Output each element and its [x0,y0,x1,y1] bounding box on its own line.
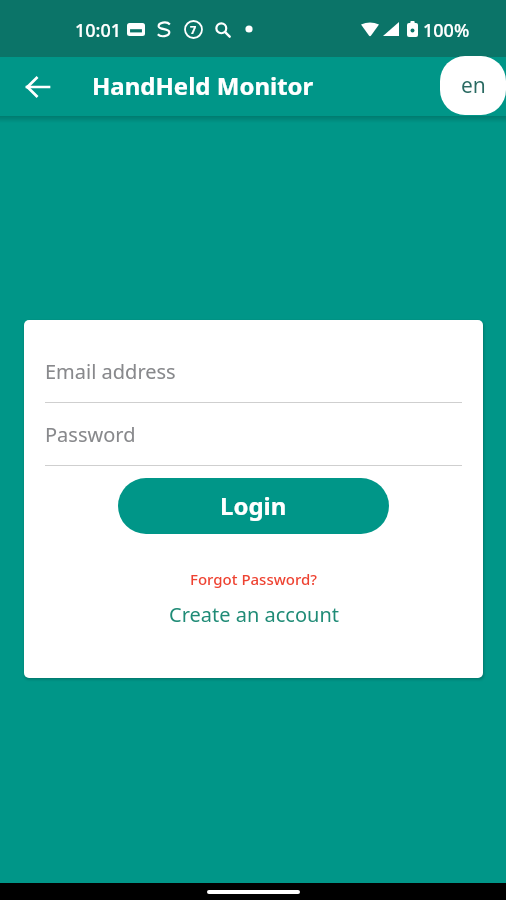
button[interactable]: Forgot Password? [190,569,318,589]
staticText: Forgot Password? [190,569,318,589]
staticText: 100% [423,18,470,43]
button[interactable]: Back [14,64,60,110]
button[interactable]: Create an account [169,601,339,628]
button[interactable]: Email address [45,346,462,403]
button[interactable]: Login [118,478,389,534]
staticText: 7 [190,22,197,37]
staticText: en [461,71,486,100]
staticText: Login [220,489,287,522]
staticText: Password [45,421,136,448]
staticText: Email address [45,358,176,385]
button[interactable]: Password [45,409,462,466]
staticText: HandHeld Monitor [92,69,314,102]
button[interactable]: en [440,56,506,115]
staticText: Create an account [169,601,339,628]
staticText: 10:01 [75,18,122,43]
